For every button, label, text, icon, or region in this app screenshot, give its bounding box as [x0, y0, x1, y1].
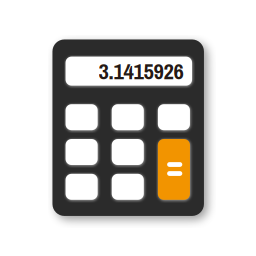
button[interactable]: Eight	[112, 104, 144, 130]
button[interactable]: Nine	[158, 104, 190, 130]
staticText: 3.1415926	[99, 56, 184, 86]
button[interactable]: One	[65, 174, 98, 200]
button[interactable]: Two	[112, 174, 144, 200]
button[interactable]: Equals	[158, 139, 190, 200]
button[interactable]: Seven	[65, 104, 98, 130]
button[interactable]: Four	[65, 139, 98, 165]
button[interactable]: Five	[112, 139, 144, 165]
